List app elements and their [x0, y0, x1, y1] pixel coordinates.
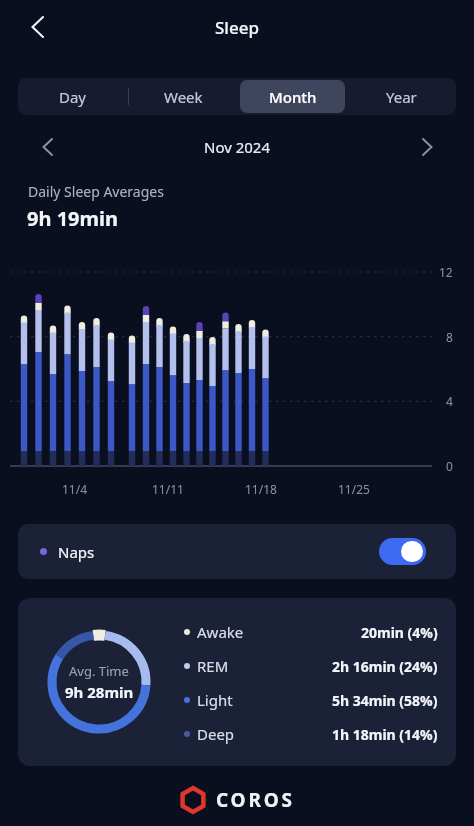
staticText: 0	[446, 458, 453, 474]
staticText: Avg. Time	[69, 662, 129, 680]
button[interactable]	[30, 130, 64, 164]
staticText: Sleep	[215, 16, 259, 39]
button[interactable]: Week	[131, 80, 236, 113]
staticText: Awake	[197, 622, 244, 642]
button[interactable]	[379, 538, 426, 565]
staticText: Week	[164, 87, 203, 107]
staticText: Naps	[58, 542, 95, 562]
staticText: 11/25	[338, 481, 370, 497]
staticText: 12	[439, 264, 453, 280]
button[interactable]	[410, 130, 444, 164]
button[interactable]: Day	[20, 80, 126, 113]
button[interactable]: Month	[240, 80, 345, 113]
staticText: 4	[446, 393, 453, 409]
staticText: 11/18	[245, 481, 277, 497]
staticText: 11/11	[152, 481, 184, 497]
staticText: 9h 19min	[27, 205, 118, 232]
button[interactable]: Year	[349, 80, 454, 113]
staticText: Nov 2024	[204, 137, 271, 157]
staticText: REM	[197, 656, 229, 676]
staticText: 5h 34min (58%)	[332, 691, 438, 710]
staticText: 8	[446, 329, 453, 345]
staticText: COROS	[216, 787, 295, 813]
staticText: 9h 28min	[65, 682, 134, 702]
staticText: Year	[386, 87, 417, 107]
staticText: 1h 18min (14%)	[332, 725, 438, 744]
staticText: Month	[269, 87, 317, 107]
staticText: Daily Sleep Averages	[28, 182, 164, 201]
staticText: 2h 16min (24%)	[332, 657, 438, 676]
staticText: Day	[59, 87, 87, 107]
staticText: 20min (4%)	[361, 623, 438, 642]
button[interactable]: Naps	[18, 524, 456, 579]
button[interactable]	[18, 8, 56, 46]
staticText: 11/4	[62, 481, 88, 497]
staticText: Light	[197, 690, 233, 710]
staticText: Deep	[197, 724, 235, 744]
